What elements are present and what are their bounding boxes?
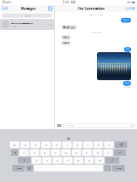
staticText: .?123	[116, 167, 121, 170]
button[interactable]: E	[31, 141, 40, 148]
staticText: H	[75, 151, 77, 154]
button[interactable]: A	[19, 149, 29, 156]
staticText: S	[34, 151, 35, 154]
staticText: Hello	[62, 36, 69, 39]
staticText: G	[65, 151, 67, 154]
button[interactable]: Edit	[2, 7, 8, 10]
button[interactable]: Q	[10, 141, 19, 148]
button[interactable]: ⌫	[115, 141, 127, 148]
staticText: ⇧	[23, 159, 25, 162]
button[interactable]: O	[94, 141, 103, 148]
staticText: Messages	[21, 7, 35, 10]
button[interactable]: C	[53, 157, 62, 164]
button[interactable]: Contact	[125, 7, 135, 10]
staticText: U	[76, 143, 78, 146]
button[interactable]: Y	[62, 141, 72, 148]
button[interactable]: K	[93, 149, 102, 156]
staticText: Y	[66, 143, 67, 146]
staticText: Search	[24, 14, 30, 17]
staticText: P	[108, 143, 109, 146]
staticText: Hello	[62, 41, 69, 45]
button[interactable]: Camera	[57, 124, 61, 127]
button[interactable]: G	[61, 149, 71, 156]
staticText: Today 9:41 AM	[89, 13, 103, 16]
staticText: Contact	[125, 7, 135, 10]
button[interactable]: ⇥	[11, 149, 18, 156]
staticText: M	[98, 159, 100, 162]
button[interactable]: W	[20, 141, 30, 148]
staticText: Send	[130, 124, 134, 127]
staticText: Q	[13, 143, 15, 146]
button[interactable]: The Conversation	[0, 19, 54, 30]
button[interactable]: V	[63, 157, 73, 164]
staticText: 9:41 AM	[63, 1, 76, 4]
button[interactable]: L	[103, 149, 113, 156]
staticText: C	[56, 159, 58, 162]
staticText: R	[45, 143, 46, 146]
button[interactable]: N	[84, 157, 94, 164]
staticText: F	[55, 151, 56, 154]
button[interactable]: U	[73, 141, 82, 148]
staticText: iMessage	[64, 124, 73, 127]
staticText: ⇧	[111, 159, 113, 162]
button[interactable]: M	[95, 157, 104, 164]
staticText: ☺	[28, 167, 31, 169]
button[interactable]: S	[30, 149, 39, 156]
staticText: X	[46, 159, 47, 162]
button[interactable]: B	[74, 157, 83, 164]
button[interactable]: .?123	[12, 165, 25, 171]
button[interactable]: P	[104, 141, 114, 148]
button[interactable]: ⇧	[105, 157, 119, 164]
button[interactable]	[34, 165, 103, 171]
button[interactable]: D	[40, 149, 50, 156]
staticText: ⌫	[119, 143, 122, 146]
staticText: 96%	[127, 1, 131, 4]
staticText: What's up?	[62, 26, 75, 29]
staticText: ◤	[10, 1, 12, 4]
staticText: ⏎	[119, 151, 121, 154]
button[interactable]: .?123	[112, 165, 125, 171]
button[interactable]: ⇧	[18, 157, 31, 164]
staticText: iPad	[2, 1, 9, 4]
staticText: OK	[125, 48, 129, 51]
staticText: Edit	[2, 7, 8, 10]
button[interactable]: Compose	[48, 6, 52, 11]
staticText: O	[97, 143, 99, 146]
staticText: B	[77, 159, 79, 162]
staticText: Hello	[122, 19, 129, 22]
button[interactable]: X	[42, 157, 52, 164]
button[interactable]	[104, 165, 111, 171]
staticText: W	[24, 143, 26, 146]
button[interactable]: Z	[32, 157, 41, 164]
staticText: T	[56, 143, 57, 146]
staticText: The Conversation	[77, 7, 104, 10]
staticText: Sent with	[124, 86, 131, 88]
staticText: ⇥	[14, 151, 16, 154]
staticText: K	[97, 151, 98, 154]
staticText: ✎	[49, 7, 52, 10]
button[interactable]: F	[51, 149, 60, 156]
staticText: 9:41 AM	[46, 23, 53, 26]
staticText: The Conversation	[11, 21, 33, 25]
staticText: Z	[36, 159, 37, 162]
button[interactable]: T	[52, 141, 61, 148]
button[interactable]: J	[82, 149, 92, 156]
button[interactable]: ⏎	[114, 149, 126, 156]
staticText: D	[44, 151, 46, 154]
staticText: Nice	[11, 25, 16, 28]
staticText: Mon 9:41 AM	[90, 31, 101, 34]
button[interactable]: I	[83, 141, 93, 148]
staticText: Nice	[124, 82, 129, 85]
staticText: N	[88, 159, 90, 162]
button[interactable]: R	[41, 141, 51, 148]
staticText: J	[86, 151, 87, 154]
staticText: A	[23, 151, 25, 154]
button[interactable]: H	[72, 149, 81, 156]
staticText: .?123	[16, 167, 21, 170]
staticText: E	[35, 143, 36, 146]
button[interactable]: ☺	[26, 165, 33, 171]
